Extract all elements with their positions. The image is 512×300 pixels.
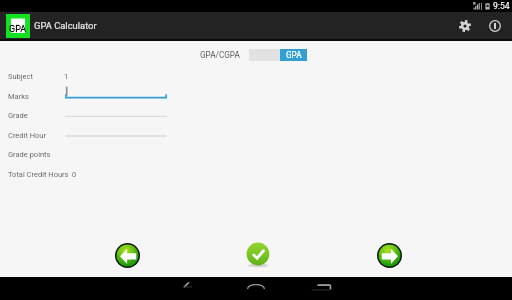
button[interactable]: Recent apps: [296, 277, 352, 300]
button[interactable]: Back: [157, 277, 213, 300]
button[interactable]: About: [480, 12, 510, 39]
staticText: GPA/CGPA: [200, 50, 240, 60]
staticText: 1: [64, 72, 69, 81]
button[interactable]: Calculate: [246, 242, 270, 266]
staticText: GPA: [286, 50, 302, 60]
staticText: 9:54: [493, 1, 510, 11]
button[interactable]: Settings: [450, 12, 480, 39]
staticText: 0: [72, 170, 77, 179]
staticText: Subject: [8, 72, 33, 81]
staticText: GPA: [9, 24, 27, 35]
staticText: Grade points: [8, 150, 51, 159]
button[interactable]: Next subject: [377, 243, 402, 268]
button[interactable]: Previous subject: [115, 243, 140, 268]
staticText: Credit Hour: [8, 131, 47, 140]
staticText: GPA Calculator: [34, 20, 97, 31]
staticText: Marks: [8, 92, 29, 101]
staticText: Total Credit Hours: [8, 170, 69, 179]
button[interactable]: Home: [228, 277, 284, 300]
button[interactable]: Toggle GPA or CGPA mode: [249, 49, 307, 61]
staticText: Grade: [8, 111, 28, 120]
